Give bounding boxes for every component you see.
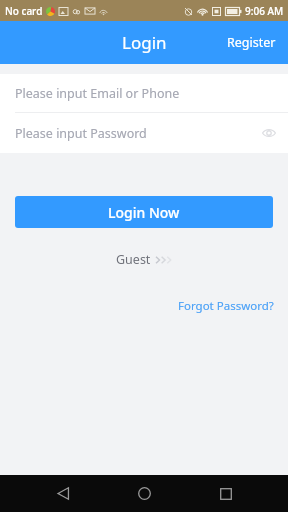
button[interactable]: Login Now xyxy=(15,196,273,228)
staticText: Guest xyxy=(116,251,151,268)
staticText: Login Now xyxy=(108,203,180,222)
staticText: No card xyxy=(5,4,43,18)
button[interactable]: Home xyxy=(126,475,163,512)
button[interactable]: Please input Email or Phone xyxy=(0,74,288,112)
button[interactable]: Show password xyxy=(250,118,288,148)
button[interactable]: Guest xyxy=(102,246,187,273)
button[interactable]: Register xyxy=(215,24,288,61)
button[interactable]: Forgot Password? xyxy=(164,293,288,319)
staticText: Login xyxy=(122,31,167,54)
staticText: 9:06 AM xyxy=(245,4,284,18)
button[interactable]: Please input Password xyxy=(0,113,288,153)
button[interactable]: Back xyxy=(45,475,82,512)
staticText: Please input Password xyxy=(15,125,147,142)
staticText: Please input Email or Phone xyxy=(15,85,180,102)
button[interactable]: Recent apps xyxy=(208,476,244,512)
staticText: Forgot Password? xyxy=(178,298,274,314)
staticText: Register xyxy=(227,34,276,51)
